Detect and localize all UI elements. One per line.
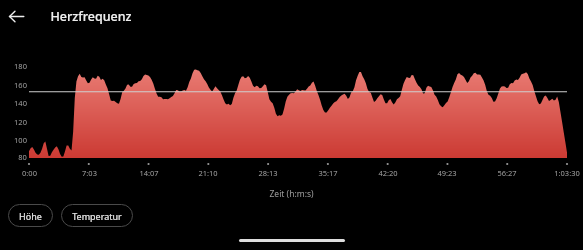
staticText: Temperatur — [72, 210, 122, 222]
button[interactable]: Höhe — [8, 204, 53, 227]
staticText: 140 — [14, 98, 27, 108]
staticText: 160 — [14, 80, 27, 90]
staticText: 42:20 — [378, 168, 398, 178]
staticText: 56:27 — [497, 168, 517, 178]
staticText: 120 — [14, 117, 27, 127]
staticText: Höhe — [19, 210, 42, 222]
staticText: 180 — [14, 61, 27, 71]
button[interactable]: Temperatur — [61, 204, 133, 227]
staticText: Zeit (h:m:s) — [269, 188, 314, 200]
staticText: 35:17 — [318, 168, 338, 178]
staticText: 21:10 — [198, 168, 218, 178]
staticText: 80 — [18, 152, 27, 162]
staticText: 100 — [14, 135, 27, 145]
staticText: 49:23 — [437, 168, 457, 178]
button[interactable]: Zurück — [0, 0, 33, 33]
staticText: 14:07 — [139, 168, 159, 178]
staticText: 7:03 — [82, 168, 97, 178]
staticText: 28:13 — [258, 168, 278, 178]
staticText: 1:03:30 — [554, 168, 580, 178]
staticText: Herzfrequenz — [50, 8, 132, 25]
staticText: 0:00 — [22, 168, 37, 178]
